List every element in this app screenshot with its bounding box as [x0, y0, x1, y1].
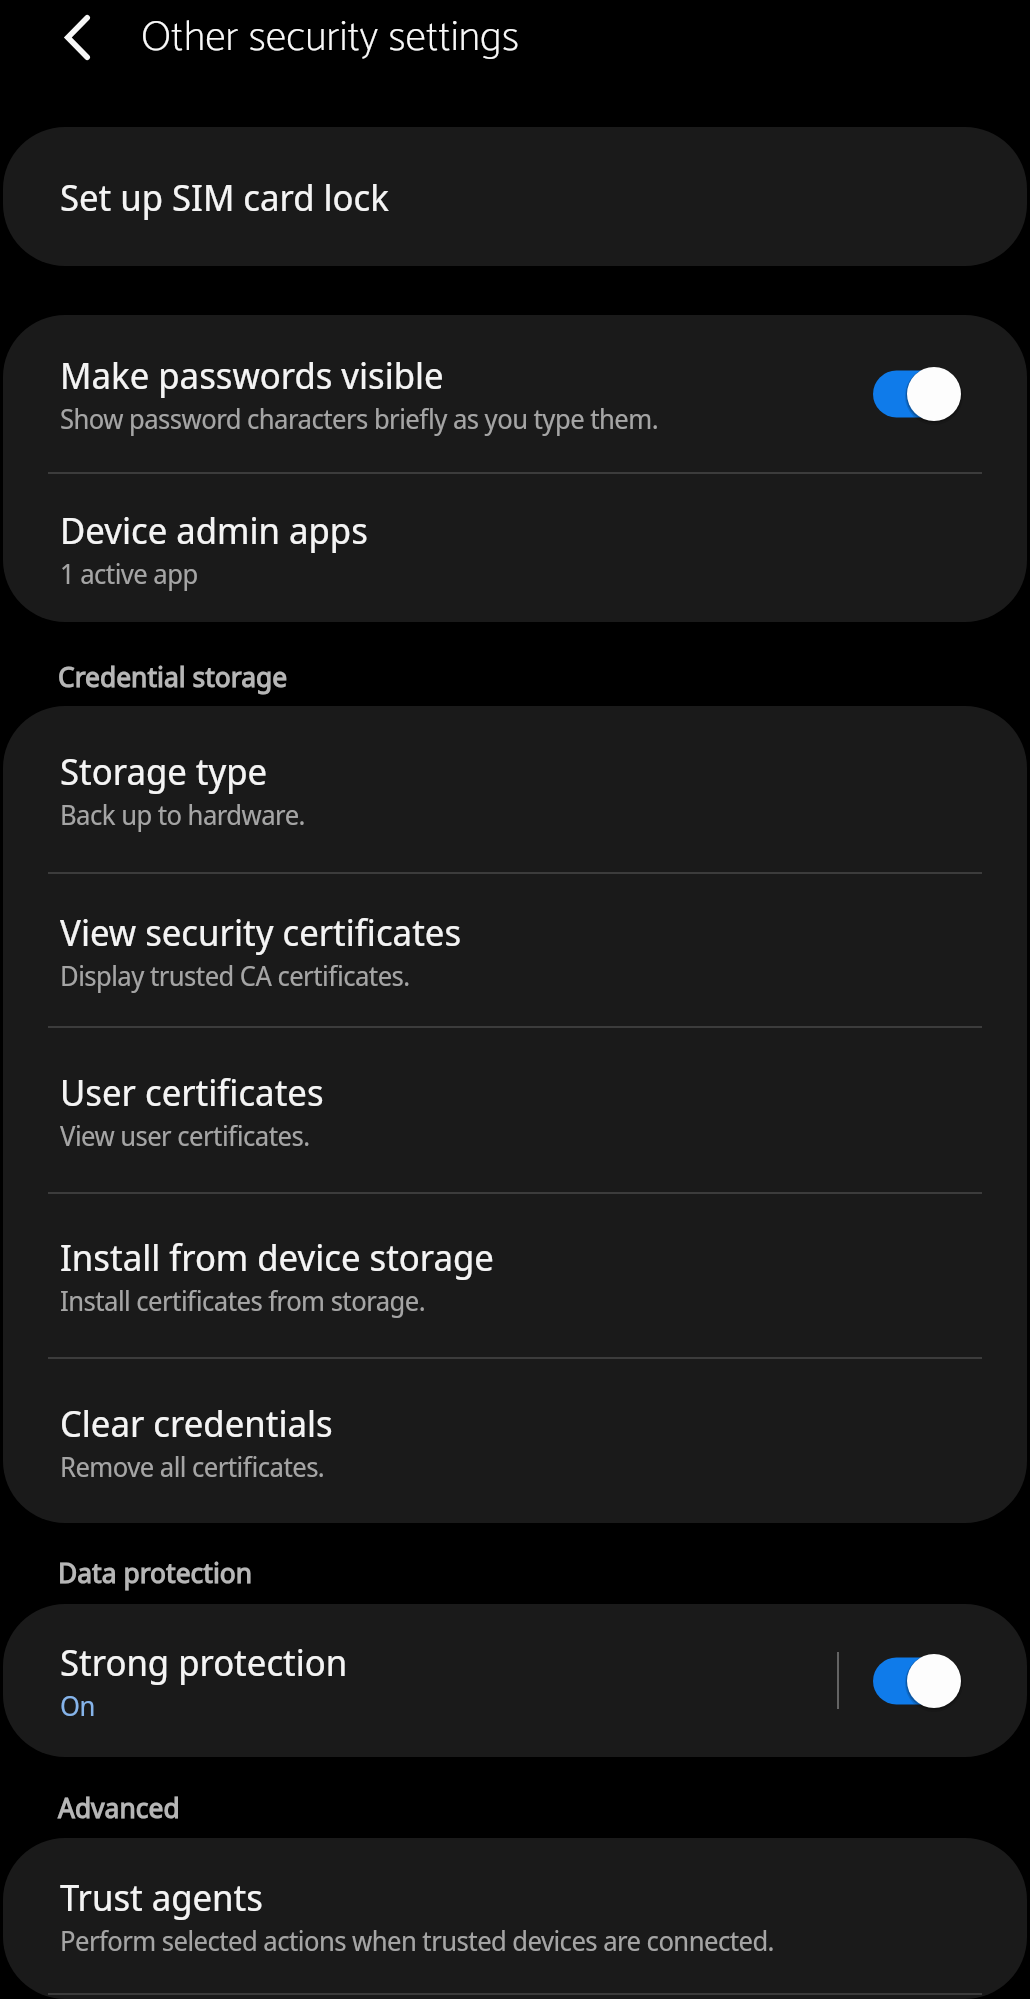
button[interactable]: Trust agents: [3, 1838, 1027, 1993]
button[interactable]: Clear credentials: [3, 1359, 1027, 1523]
button[interactable]: Make passwords visible: [3, 315, 1027, 472]
button[interactable]: Strong protection: [873, 1652, 961, 1710]
staticText: View security certificates: [60, 907, 462, 957]
button[interactable]: Install from device storage: [3, 1194, 1027, 1357]
button[interactable]: Pin windows: [3, 1995, 1027, 1999]
staticText: Install certificates from storage.: [60, 1282, 426, 1319]
staticText: Display trusted CA certificates.: [60, 957, 410, 994]
staticText: 1 active app: [60, 555, 198, 592]
staticText: Install from device storage: [60, 1232, 494, 1282]
button[interactable]: Navigate up: [45, 0, 109, 75]
button[interactable]: View security certificates: [3, 874, 1027, 1026]
staticText: Set up SIM card lock: [60, 172, 389, 222]
staticText: Perform selected actions when trusted de…: [60, 1922, 774, 1959]
staticText: Remove all certificates.: [60, 1448, 325, 1485]
staticText: Other security settings: [141, 3, 519, 73]
staticText: User certificates: [60, 1067, 324, 1117]
button[interactable]: Device admin apps: [3, 474, 1027, 622]
staticText: Back up to hardware.: [60, 796, 305, 833]
staticText: Advanced: [58, 1788, 180, 1826]
button[interactable]: Strong protection: [3, 1604, 1027, 1757]
button[interactable]: Storage type: [3, 706, 1027, 872]
staticText: Strong protection: [60, 1637, 348, 1687]
staticText: Show password characters briefly as you …: [60, 400, 659, 437]
button[interactable]: Set up SIM card lock: [3, 127, 1027, 266]
staticText: Credential storage: [58, 657, 288, 695]
staticText: Device admin apps: [60, 505, 368, 555]
button[interactable]: Make passwords visible: [873, 365, 961, 423]
staticText: Data protection: [58, 1553, 253, 1591]
staticText: Trust agents: [60, 1872, 263, 1922]
staticText: On: [60, 1687, 95, 1724]
staticText: Storage type: [60, 746, 268, 796]
button[interactable]: User certificates: [3, 1028, 1027, 1192]
staticText: Make passwords visible: [60, 350, 444, 400]
staticText: View user certificates.: [60, 1117, 310, 1154]
staticText: Clear credentials: [60, 1398, 333, 1448]
